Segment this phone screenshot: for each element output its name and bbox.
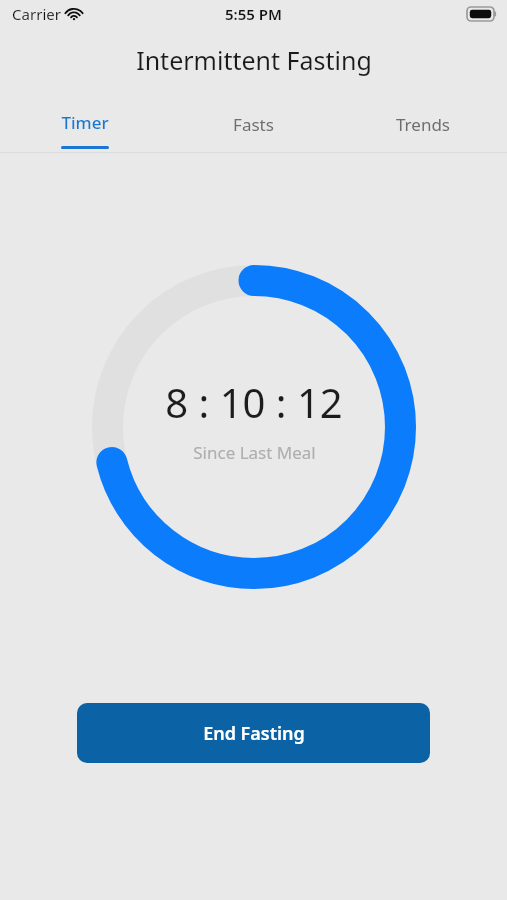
staticText: Since Last Meal (193, 441, 316, 464)
staticText: Carrier (12, 4, 61, 24)
button[interactable]: End Fasting (77, 703, 430, 763)
staticText: Intermittent Fasting (136, 43, 372, 77)
staticText: Timer (61, 111, 109, 134)
staticText: 8 : 10 : 12 (165, 375, 343, 429)
button[interactable]: Trends (338, 92, 507, 152)
staticText: End Fasting (203, 721, 305, 746)
button[interactable]: Fasts (169, 92, 338, 152)
staticText: 5:55 PM (225, 4, 282, 24)
button[interactable]: Timer (0, 92, 169, 152)
staticText: Trends (396, 113, 450, 136)
staticText: Fasts (233, 113, 274, 136)
